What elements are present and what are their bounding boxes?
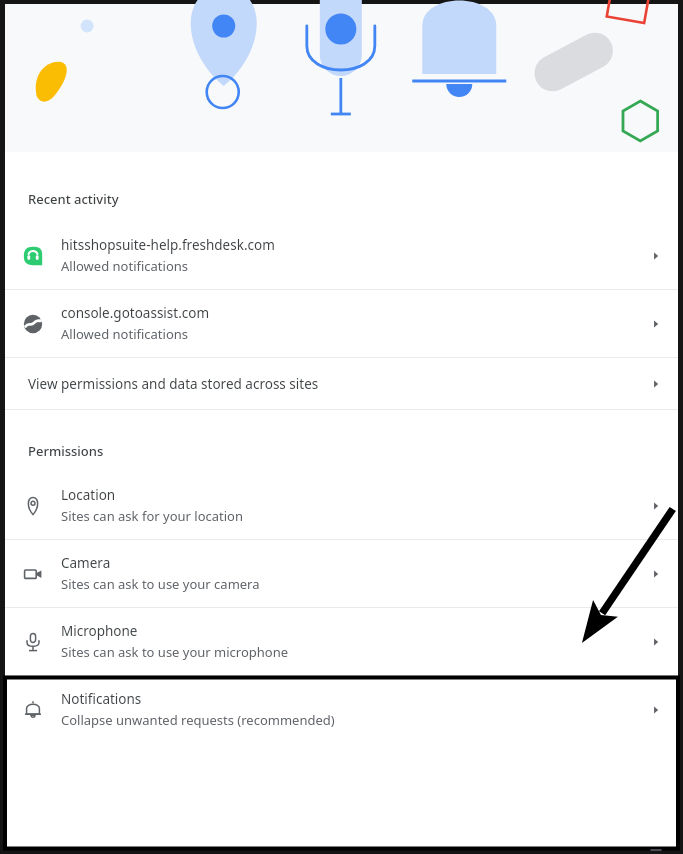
staticText: Recent activity xyxy=(28,190,119,208)
button[interactable]: hitsshopsuite-help.freshdesk.com xyxy=(5,222,678,289)
other: Open xyxy=(634,484,678,528)
staticText: Sites can ask to use your microphone xyxy=(61,643,289,661)
staticText: Collapse unwanted requests (recommended) xyxy=(61,711,335,729)
button[interactable]: Location xyxy=(5,472,678,539)
staticText: Microphone xyxy=(61,622,138,640)
other: Open xyxy=(634,620,678,664)
other: Open xyxy=(634,302,678,346)
button[interactable]: View permissions and data stored across … xyxy=(5,358,678,409)
staticText: Sites can ask for your location xyxy=(61,507,243,525)
button[interactable]: console.gotoassist.com xyxy=(5,290,678,357)
button[interactable]: Camera xyxy=(5,540,678,607)
staticText: Location xyxy=(61,486,116,504)
staticText: hitsshopsuite-help.freshdesk.com xyxy=(61,236,275,254)
other: Open xyxy=(634,688,678,732)
staticText: Notifications xyxy=(61,690,142,708)
staticText: Permissions xyxy=(28,442,104,460)
other: Open xyxy=(634,362,678,406)
button[interactable]: Microphone xyxy=(5,608,678,675)
staticText: View permissions and data stored across … xyxy=(28,375,634,393)
staticText: Camera xyxy=(61,554,111,572)
staticText: Allowed notifications xyxy=(61,325,189,343)
other: Open xyxy=(634,234,678,278)
staticText: console.gotoassist.com xyxy=(61,304,210,322)
button[interactable]: Notifications xyxy=(5,676,678,743)
other: Open xyxy=(634,552,678,596)
staticText: Sites can ask to use your camera xyxy=(61,575,260,593)
staticText: Allowed notifications xyxy=(61,257,189,275)
